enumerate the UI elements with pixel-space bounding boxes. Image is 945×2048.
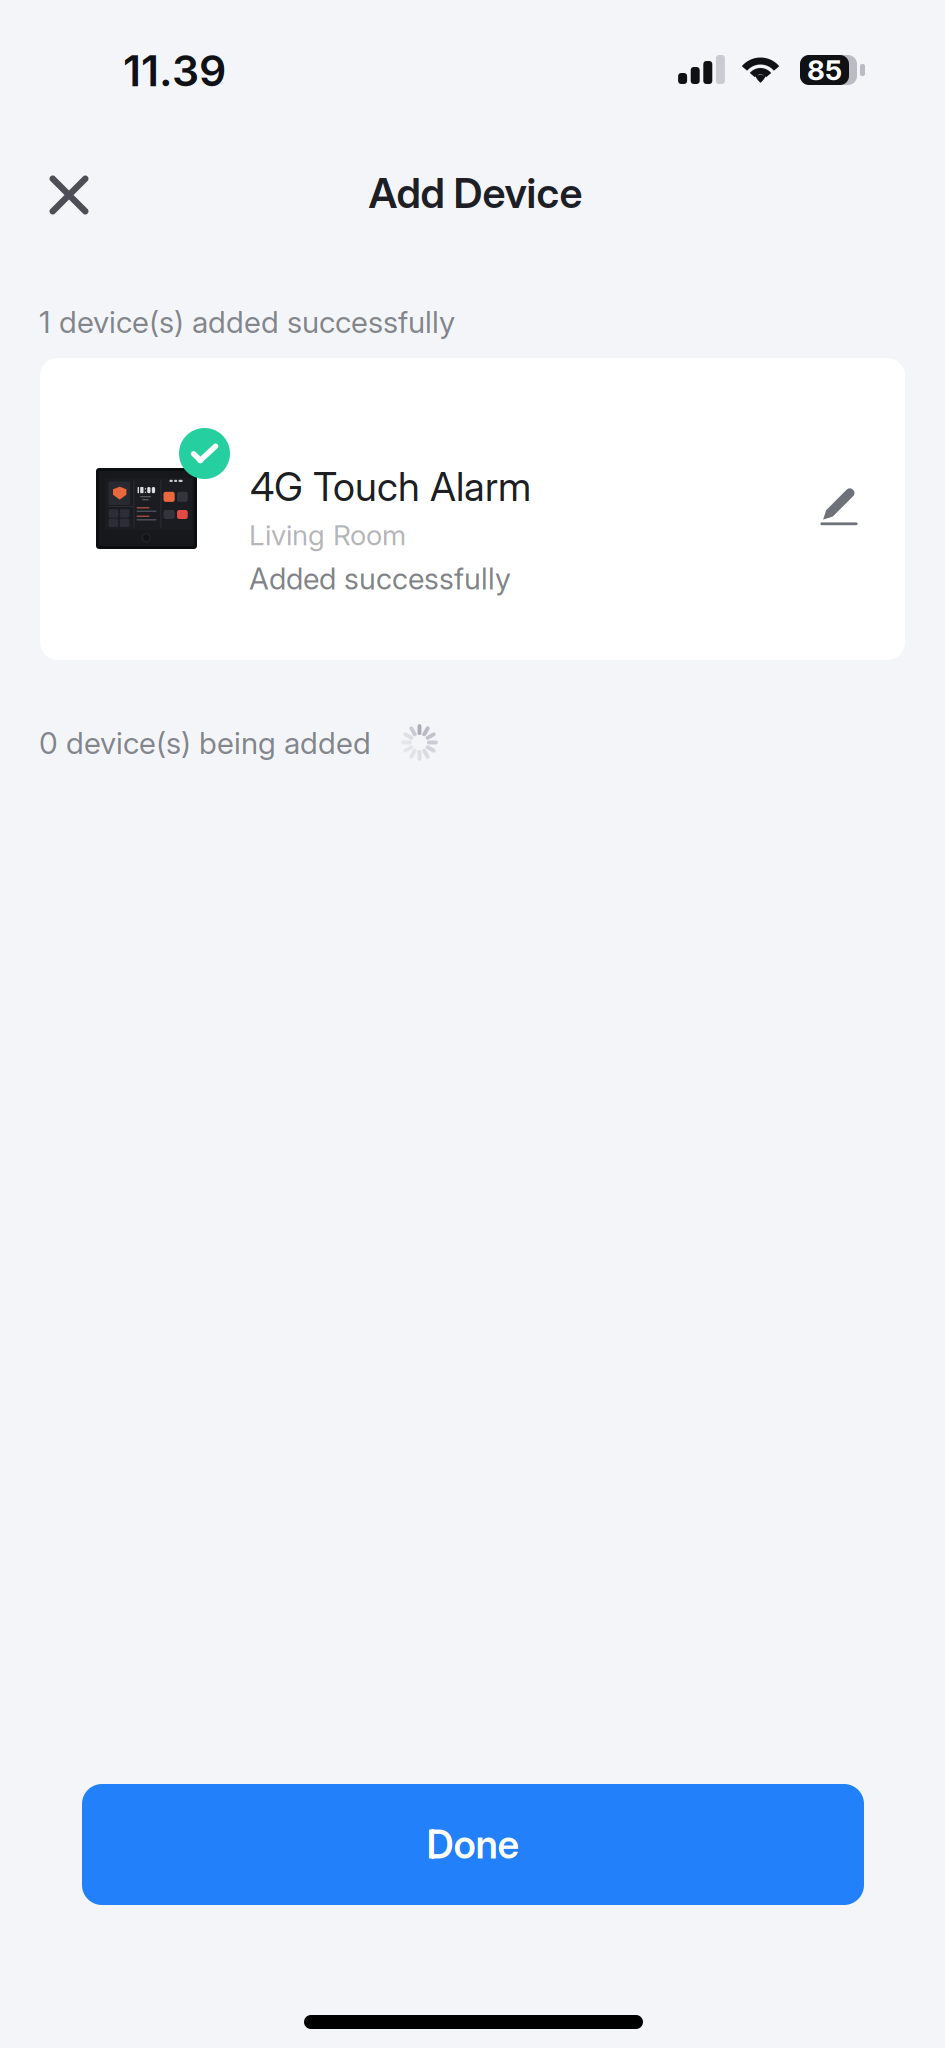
staticText: 1 device(s) added successfully: [39, 304, 455, 340]
button[interactable]: Done: [82, 1784, 864, 1905]
button[interactable]: Rename device: [800, 469, 878, 547]
staticText: Add Device: [368, 168, 582, 218]
staticText: 0 device(s) being added: [39, 725, 371, 761]
staticText: 4G Touch Alarm: [250, 463, 531, 511]
staticText: 85: [807, 53, 842, 87]
staticText: Living Room: [249, 518, 406, 552]
staticText: Added successfully: [249, 561, 511, 596]
staticText: Done: [426, 1821, 519, 1868]
staticText: 11.39: [123, 45, 226, 97]
button[interactable]: Close: [26, 152, 112, 238]
